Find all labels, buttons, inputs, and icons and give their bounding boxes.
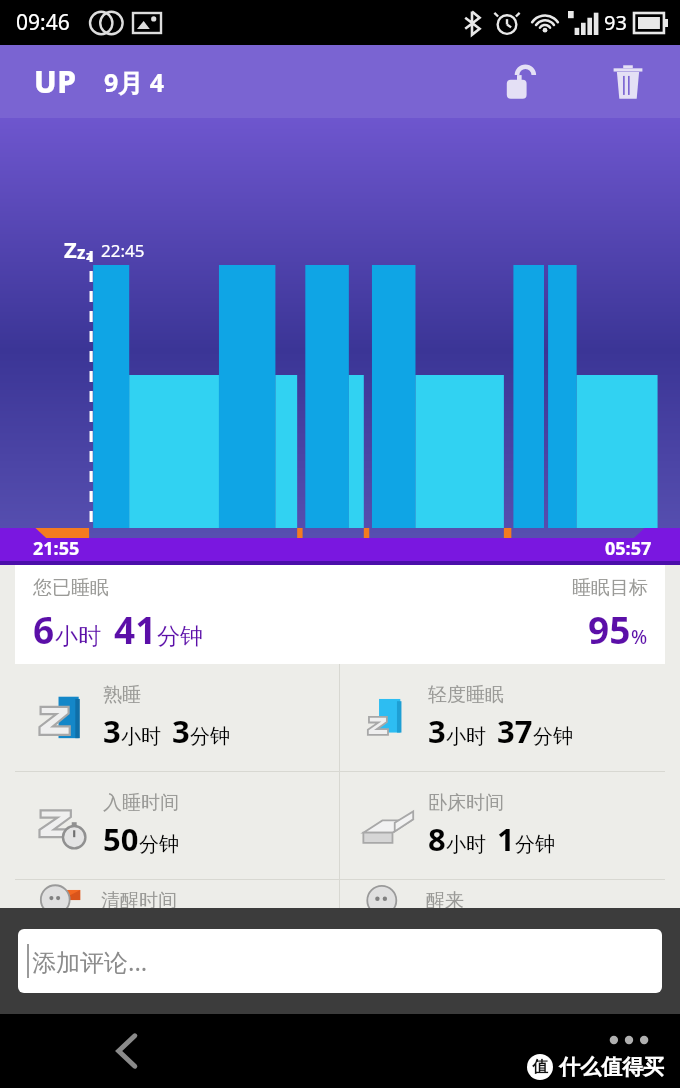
staticText: 小时 [55,622,101,651]
staticText: 95 [588,604,631,654]
staticText: 50 [103,818,139,860]
staticText: 9月 4 [104,65,165,99]
button[interactable]: 添加评论... [18,929,662,993]
button[interactable]: 轻度睡眠 [340,664,665,771]
staticText: 1 [497,818,515,860]
staticText: 93 [604,9,627,36]
button[interactable]: Delete [602,56,654,108]
button[interactable]: 入睡时间 [15,772,339,879]
staticText: 睡眠目标 [572,576,648,600]
button[interactable]: 熟睡 [15,664,339,771]
staticText: 入睡时间 [103,791,179,815]
staticText: 分钟 [515,832,555,857]
staticText: 分钟 [139,832,179,857]
button[interactable]: 您已睡眠 [15,565,665,664]
button[interactable]: Back [100,1024,154,1078]
staticText: 3 [172,710,190,752]
staticText: 醒来 [426,889,464,908]
staticText: % [631,624,648,650]
staticText: 轻度睡眠 [428,683,504,707]
staticText: 卧床时间 [428,791,504,815]
staticText: 09:46 [16,8,70,37]
staticText: 05:57 [605,536,652,561]
staticText: 21:55 [33,536,80,561]
staticText: z [77,241,86,264]
staticText: z [86,246,93,264]
staticText: 小时 [121,724,161,749]
staticText: 6 [33,604,55,654]
staticText: 22:45 [101,239,145,262]
staticText: 值 [532,1057,548,1077]
staticText: 8 [428,818,446,860]
button[interactable]: 卧床时间 [340,772,665,879]
staticText: 分钟 [190,724,230,749]
staticText: 3 [428,710,446,752]
staticText: 小时 [446,724,486,749]
staticText: 41 [114,604,157,654]
button[interactable]: Menu [602,1025,656,1055]
staticText: 添加评论... [32,945,148,978]
staticText: UP [34,61,77,102]
staticText: Z [64,234,77,264]
staticText: 清醒时间 [101,889,177,908]
staticText: 分钟 [533,724,573,749]
staticText: 什么值得买 [559,1054,664,1080]
staticText: 分钟 [157,622,203,651]
staticText: 37 [497,710,533,752]
staticText: 小时 [446,832,486,857]
button[interactable]: Unlock [494,56,546,108]
staticText: 您已睡眠 [33,576,109,600]
staticText: 熟睡 [103,683,141,707]
staticText: 3 [103,710,121,752]
